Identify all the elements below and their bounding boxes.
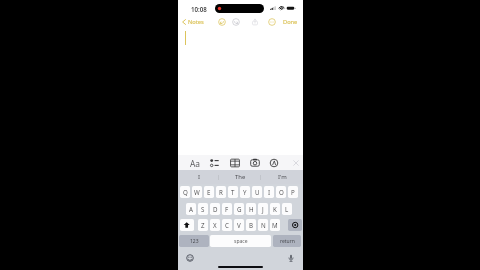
button[interactable]: Markup xyxy=(268,155,280,170)
staticText: E xyxy=(207,188,211,196)
staticText: A xyxy=(189,205,193,213)
button[interactable]: More xyxy=(266,16,278,28)
button[interactable]: C xyxy=(222,219,232,231)
button[interactable]: space xyxy=(210,235,271,247)
button[interactable]: Z xyxy=(198,219,208,231)
button[interactable]: P xyxy=(288,186,298,198)
button[interactable]: H xyxy=(246,203,256,215)
button[interactable]: V xyxy=(234,219,244,231)
button[interactable]: Close keyboard xyxy=(290,155,302,170)
staticText: The xyxy=(235,173,246,181)
button[interactable]: Q xyxy=(180,186,190,198)
button[interactable]: E xyxy=(204,186,214,198)
staticText: I'm xyxy=(278,173,287,181)
button[interactable]: B xyxy=(246,219,256,231)
button[interactable]: I'm xyxy=(261,170,303,184)
button[interactable]: Dictate xyxy=(285,252,297,264)
button[interactable]: O xyxy=(276,186,286,198)
button[interactable]: U xyxy=(252,186,262,198)
button[interactable]: Share xyxy=(249,16,261,28)
staticText: B xyxy=(249,221,254,229)
staticText: I xyxy=(268,188,271,196)
button[interactable]: L xyxy=(282,203,292,215)
button[interactable]: N xyxy=(258,219,268,231)
staticText: C xyxy=(225,221,229,229)
staticText: Y xyxy=(243,188,247,196)
button[interactable]: A xyxy=(186,203,196,215)
button[interactable]: X xyxy=(210,219,220,231)
staticText: Z xyxy=(201,221,205,229)
button[interactable]: T xyxy=(228,186,238,198)
button[interactable]: 123 xyxy=(179,235,209,247)
button[interactable]: Table xyxy=(229,155,241,170)
button[interactable]: Redo xyxy=(230,16,242,28)
staticText: F xyxy=(225,205,229,213)
staticText: 123 xyxy=(190,238,199,245)
button[interactable]: F xyxy=(222,203,232,215)
staticText: N xyxy=(261,221,266,229)
button[interactable]: Photo xyxy=(249,155,261,170)
staticText: V xyxy=(237,221,241,229)
staticText: J xyxy=(262,205,264,213)
button[interactable]: Checklist xyxy=(209,155,221,170)
button[interactable]: Notes xyxy=(182,17,204,27)
button[interactable]: K xyxy=(270,203,280,215)
staticText: X xyxy=(213,221,217,229)
button[interactable]: Y xyxy=(240,186,250,198)
button[interactable]: I xyxy=(178,170,219,184)
staticText: D xyxy=(213,205,218,213)
staticText: Done xyxy=(283,18,298,26)
button[interactable]: Emoji xyxy=(184,252,196,264)
staticText: I xyxy=(198,173,200,181)
staticText: R xyxy=(219,188,223,196)
button[interactable]: Format xyxy=(189,155,201,170)
staticText: K xyxy=(273,205,277,213)
staticText: U xyxy=(255,188,260,196)
staticText: M xyxy=(272,221,278,229)
button[interactable]: W xyxy=(192,186,202,198)
button[interactable]: R xyxy=(216,186,226,198)
staticText: Q xyxy=(183,188,188,196)
staticText: S xyxy=(201,205,205,213)
staticText: G xyxy=(237,205,242,213)
button[interactable]: Done xyxy=(283,17,298,27)
button[interactable]: Shift xyxy=(180,219,194,231)
button[interactable]: J xyxy=(258,203,268,215)
staticText: Notes xyxy=(188,18,204,26)
button[interactable]: Backspace xyxy=(288,219,302,231)
staticText: L xyxy=(285,205,289,213)
staticText: 10:08 xyxy=(191,5,207,13)
staticText: H xyxy=(249,205,254,213)
button[interactable]: I xyxy=(264,186,274,198)
button[interactable]: G xyxy=(234,203,244,215)
button[interactable]: The xyxy=(219,170,261,184)
staticText: P xyxy=(291,188,295,196)
button[interactable]: S xyxy=(198,203,208,215)
staticText: space xyxy=(234,238,248,245)
staticText: O xyxy=(279,188,284,196)
button[interactable]: return xyxy=(273,235,301,247)
staticText: return xyxy=(280,238,295,245)
button[interactable]: Undo xyxy=(216,16,228,28)
staticText: W xyxy=(194,188,200,196)
button[interactable]: D xyxy=(210,203,220,215)
staticText: Aa xyxy=(190,158,201,169)
staticText: T xyxy=(231,188,235,196)
button[interactable]: M xyxy=(270,219,280,231)
